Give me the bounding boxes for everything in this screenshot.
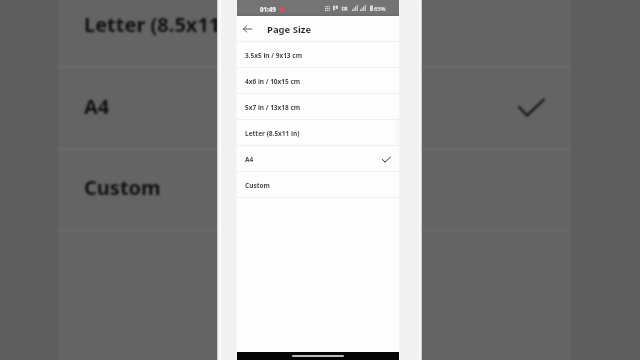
staticText: 3.5x5 in / 9x13 cm [245, 51, 302, 60]
staticText: Custom [245, 181, 270, 190]
button[interactable]: Letter (8.5x11 in) [58, 0, 571, 68]
button[interactable]: 3.5x5 in / 9x13 cm [237, 42, 399, 68]
staticText: 4x6 in / 10x15 cm [245, 77, 301, 86]
button[interactable]: Letter (8.5x11 in) [237, 120, 399, 146]
button[interactable]: A4 [237, 146, 399, 172]
staticText: Letter (8.5x11 in) [84, 11, 252, 38]
button[interactable]: A4 [58, 68, 571, 150]
button[interactable]: 4x6 in / 10x15 cm [237, 68, 399, 94]
staticText: Page Size [267, 23, 312, 36]
staticText: 5x7 in / 13x18 cm [245, 103, 301, 112]
staticText: 65% [374, 5, 386, 13]
button[interactable]: 5x7 in / 13x18 cm [237, 94, 399, 120]
button[interactable]: Custom [58, 150, 571, 231]
button[interactable]: Custom [237, 172, 399, 198]
staticText: Letter (8.5x11 in) [245, 129, 300, 138]
staticText: A4 [245, 155, 254, 164]
staticText: A4 [84, 93, 110, 120]
staticText: Custom [84, 174, 161, 201]
button[interactable]: Back [238, 16, 257, 42]
staticText: 01:49 [260, 5, 276, 13]
